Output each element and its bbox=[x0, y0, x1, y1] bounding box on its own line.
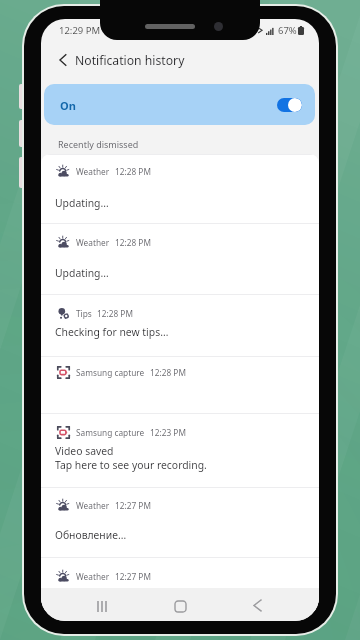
button[interactable]: Weather bbox=[41, 557, 319, 611]
staticText: 12:28 PM bbox=[150, 367, 186, 378]
staticText: Tap here to see your recording. bbox=[55, 458, 207, 472]
staticText: 12:28 PM bbox=[115, 166, 151, 177]
staticText: Weather bbox=[76, 166, 110, 177]
button[interactable]: Home bbox=[169, 598, 191, 614]
staticText: Checking for new tips… bbox=[55, 325, 169, 339]
staticText: 12:27 PM bbox=[115, 500, 151, 511]
staticText: Recently dismissed bbox=[58, 138, 139, 150]
staticText: 67% bbox=[278, 24, 297, 37]
staticText: Updating… bbox=[55, 196, 109, 210]
staticText: Updating… bbox=[55, 266, 109, 280]
button[interactable]: Navigate up bbox=[41, 47, 319, 73]
button[interactable]: Weather bbox=[41, 154, 319, 223]
staticText: Tips bbox=[76, 308, 92, 319]
button[interactable]: Samsung capture bbox=[41, 413, 319, 487]
staticText: Weather bbox=[76, 571, 110, 582]
button[interactable]: Tips bbox=[41, 294, 319, 356]
staticText: Weather bbox=[76, 500, 110, 511]
button[interactable]: Navigate up bbox=[52, 49, 74, 71]
staticText: Samsung capture bbox=[76, 367, 145, 378]
staticText: Video saved bbox=[55, 444, 114, 458]
staticText: 12:29 PM bbox=[59, 24, 101, 37]
button[interactable]: Toggle notification history bbox=[277, 98, 302, 112]
staticText: 12:28 PM bbox=[115, 237, 151, 248]
staticText: Weather bbox=[76, 237, 110, 248]
button[interactable]: Samsung capture bbox=[41, 356, 319, 413]
staticText: 12:28 PM bbox=[97, 308, 133, 319]
staticText: On bbox=[60, 98, 76, 113]
staticText: Обновление… bbox=[55, 528, 127, 542]
staticText: 12:27 PM bbox=[115, 571, 151, 582]
button[interactable]: Recent apps bbox=[91, 598, 113, 614]
button[interactable]: Weather bbox=[41, 487, 319, 557]
button[interactable]: On bbox=[44, 84, 315, 125]
button[interactable]: Back bbox=[246, 597, 268, 613]
staticText: Samsung capture bbox=[76, 427, 145, 438]
button[interactable]: Weather bbox=[41, 223, 319, 294]
staticText: Notification history bbox=[75, 52, 185, 69]
staticText: 12:23 PM bbox=[150, 427, 186, 438]
